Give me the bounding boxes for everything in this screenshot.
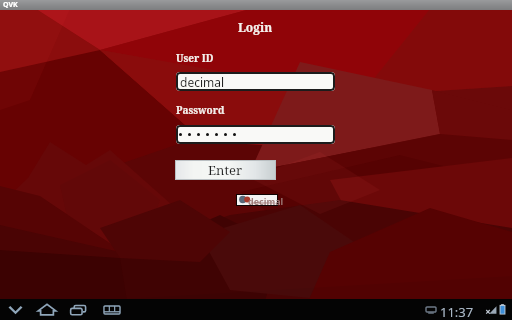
staticText: 11:37 bbox=[440, 303, 474, 320]
button[interactable]: Back bbox=[4, 302, 28, 318]
button[interactable]: Keyboard bbox=[100, 303, 122, 317]
button[interactable]: Enter bbox=[176, 161, 275, 179]
button[interactable] bbox=[176, 125, 335, 144]
other: No network bbox=[486, 305, 497, 315]
staticText: User ID bbox=[176, 51, 214, 65]
staticText: Password bbox=[176, 103, 225, 117]
staticText: Login bbox=[238, 19, 273, 35]
staticText: decimal bbox=[248, 195, 284, 205]
button[interactable]: Recent apps bbox=[68, 302, 90, 318]
button[interactable]: decimal logo bbox=[237, 195, 277, 205]
button[interactable]: Home bbox=[36, 301, 58, 318]
other: Cast screen bbox=[426, 307, 436, 314]
staticText: decimal bbox=[180, 74, 225, 90]
staticText: QVK bbox=[3, 0, 18, 10]
other: Battery bbox=[499, 304, 506, 315]
button[interactable]: decimal bbox=[176, 72, 335, 91]
staticText: Enter bbox=[208, 161, 243, 179]
